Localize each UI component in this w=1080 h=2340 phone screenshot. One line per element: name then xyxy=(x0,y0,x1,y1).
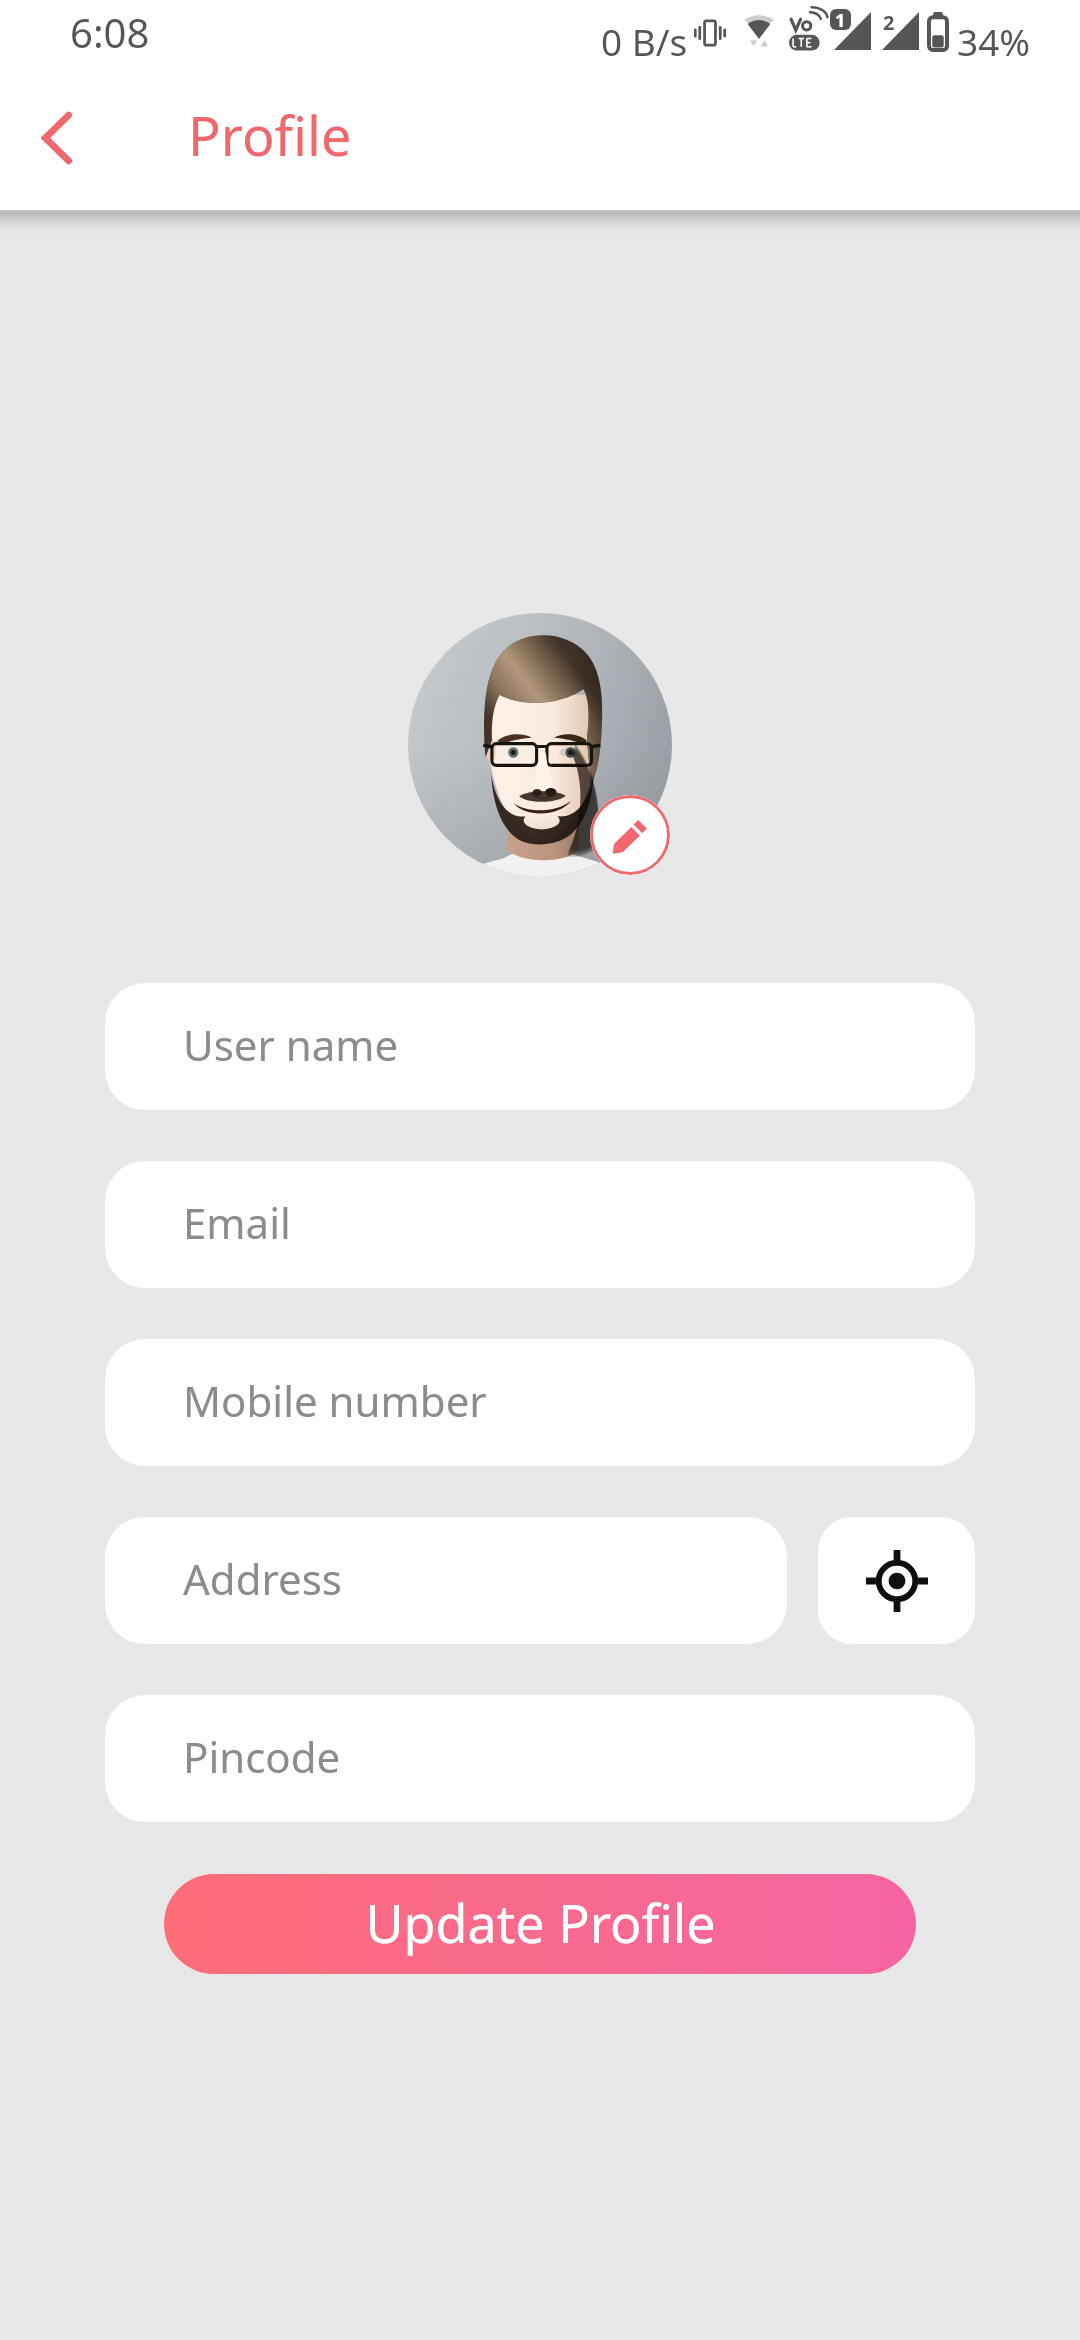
staticText: 2 xyxy=(883,9,895,30)
button[interactable]: Profile photo xyxy=(408,613,672,877)
staticText: Email xyxy=(183,1194,291,1251)
button[interactable]: User name xyxy=(105,983,975,1110)
button[interactable]: Update Profile xyxy=(164,1874,916,1974)
button[interactable]: Edit photo xyxy=(590,795,670,875)
staticText: 6:08 xyxy=(70,5,150,59)
button[interactable]: Address xyxy=(105,1517,787,1644)
button[interactable]: Pincode xyxy=(105,1695,975,1822)
staticText: User name xyxy=(183,1016,399,1073)
staticText: Address xyxy=(183,1550,342,1607)
staticText: Profile xyxy=(188,98,352,172)
button[interactable]: Email xyxy=(105,1161,975,1288)
button[interactable]: Use current location xyxy=(818,1517,975,1644)
staticText: Update Profile xyxy=(365,1887,716,1958)
staticText: 0 B/s xyxy=(601,16,688,66)
staticText: Mobile number xyxy=(183,1372,487,1429)
button[interactable]: Back xyxy=(14,95,100,181)
staticText: 34% xyxy=(957,16,1031,66)
button[interactable]: Mobile number xyxy=(105,1339,975,1466)
staticText: Pincode xyxy=(183,1728,341,1785)
staticText: 1 xyxy=(835,9,846,29)
